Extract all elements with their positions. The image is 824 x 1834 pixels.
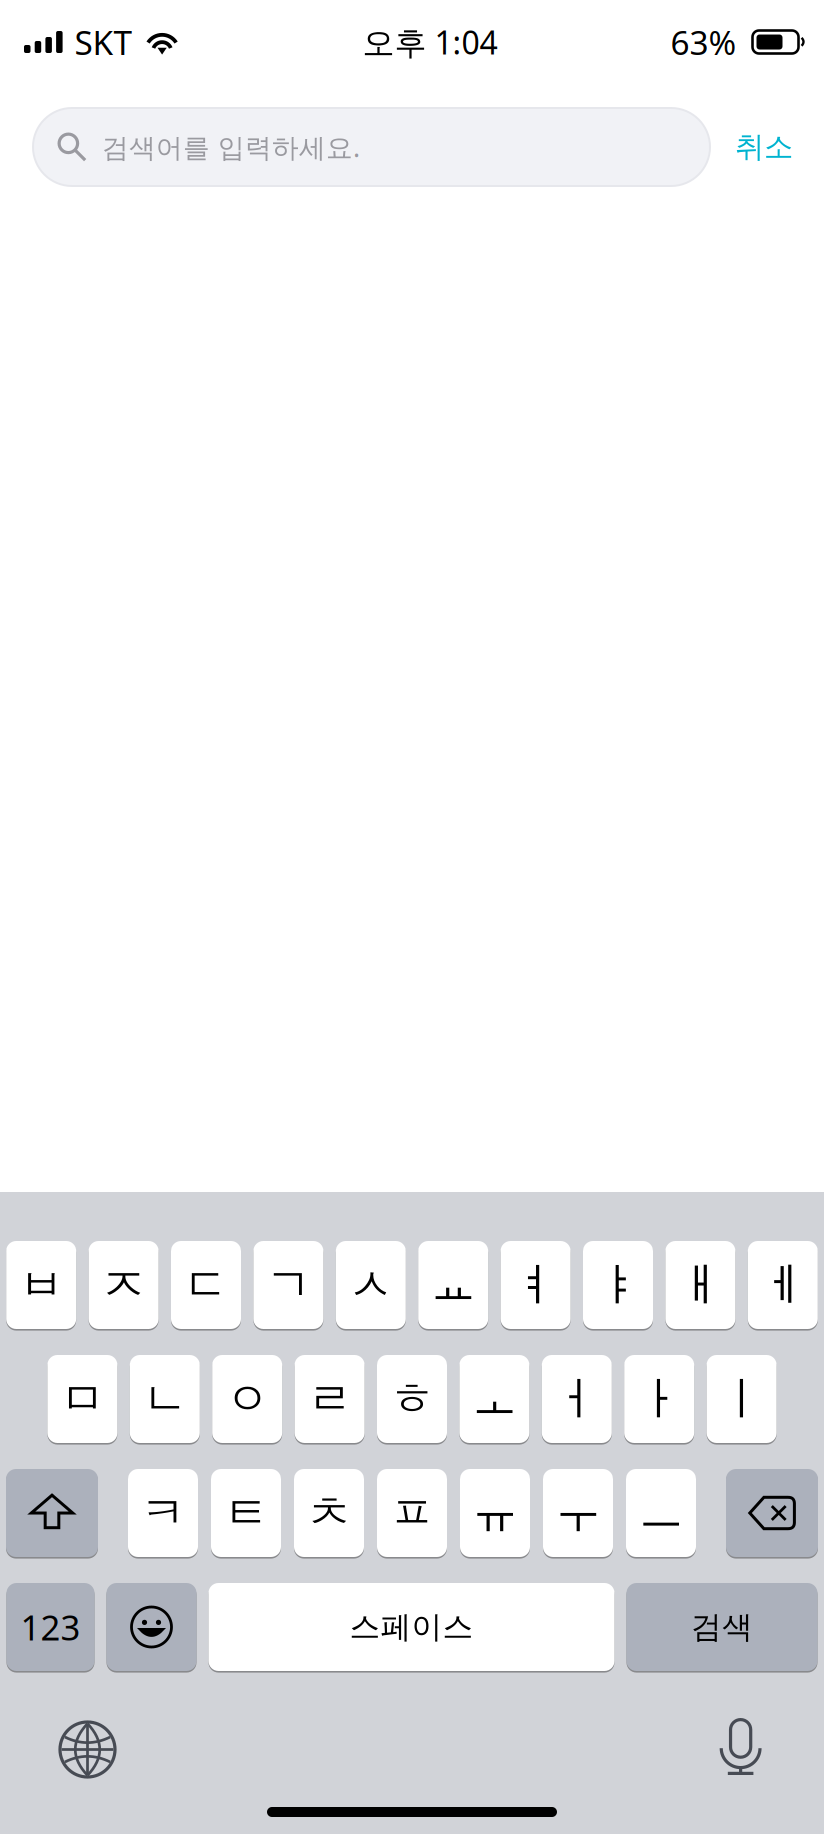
staticText: ㅑ (595, 1257, 640, 1313)
button[interactable]: ㅏ (624, 1355, 694, 1443)
staticText: ㅎ (389, 1371, 434, 1427)
staticText: ㅊ (306, 1485, 351, 1541)
button[interactable]: 스페이스 (208, 1583, 614, 1671)
button[interactable]: ㅋ (128, 1469, 198, 1557)
button[interactable]: ㅡ (626, 1469, 696, 1557)
button[interactable]: ㅓ (542, 1355, 612, 1443)
button[interactable]: ㅊ (294, 1469, 364, 1557)
button[interactable]: ㅅ (336, 1241, 406, 1329)
button[interactable]: ㅛ (418, 1241, 488, 1329)
staticText: SKT (75, 20, 133, 64)
button[interactable]: ㄷ (171, 1241, 241, 1329)
staticText: ㅐ (678, 1257, 723, 1313)
button[interactable]: ㅣ (707, 1355, 777, 1443)
button[interactable]: ㅕ (501, 1241, 571, 1329)
staticText: ㅏ (637, 1371, 682, 1427)
staticText: 취소 (735, 129, 793, 165)
button[interactable]: 123 (6, 1583, 94, 1671)
staticText: ㅠ (472, 1485, 517, 1541)
button[interactable]: ㅍ (377, 1469, 447, 1557)
button[interactable]: ㄴ (130, 1355, 200, 1443)
button[interactable]: Delete (726, 1469, 818, 1557)
button[interactable]: ㅂ (6, 1241, 76, 1329)
staticText: ㅗ (472, 1371, 517, 1427)
button[interactable]: ㅑ (583, 1241, 653, 1329)
staticText: ㅛ (431, 1257, 476, 1313)
staticText: 검색어를 입력하세요. (102, 129, 360, 165)
button[interactable]: ㅐ (665, 1241, 735, 1329)
staticText: 63% (670, 20, 736, 64)
button[interactable]: ㅠ (460, 1469, 530, 1557)
button[interactable]: ㄹ (295, 1355, 365, 1443)
button[interactable]: Shift (6, 1469, 98, 1557)
button[interactable]: 취소 (710, 108, 814, 186)
button[interactable]: 검색 (626, 1583, 817, 1671)
staticText: ㅓ (554, 1371, 599, 1427)
staticText: ㄴ (142, 1371, 187, 1427)
staticText: ㅕ (513, 1257, 558, 1313)
staticText: 오후 1:04 (362, 21, 497, 63)
staticText: ㅈ (101, 1257, 146, 1313)
staticText: 검색 (691, 1608, 753, 1646)
button[interactable]: ㄱ (253, 1241, 323, 1329)
button[interactable]: ㅁ (47, 1355, 117, 1443)
staticText: ㅣ (719, 1371, 764, 1427)
button[interactable]: Next keyboard (46, 1714, 129, 1785)
button[interactable]: Dictate (705, 1714, 776, 1779)
staticText: ㅡ (638, 1485, 683, 1541)
staticText: ㅂ (19, 1257, 64, 1313)
staticText: ㄹ (307, 1371, 352, 1427)
button[interactable]: ㅜ (543, 1469, 613, 1557)
button[interactable]: ㅔ (748, 1241, 818, 1329)
staticText: ㅍ (389, 1485, 434, 1541)
staticText: ㅋ (140, 1485, 185, 1541)
button[interactable]: ㅗ (459, 1355, 529, 1443)
button[interactable]: ㅎ (377, 1355, 447, 1443)
staticText: ㅅ (348, 1257, 393, 1313)
button[interactable]: ㅈ (89, 1241, 159, 1329)
button[interactable]: ㅇ (212, 1355, 282, 1443)
button[interactable]: Emoji (106, 1583, 196, 1671)
staticText: 123 (20, 1604, 80, 1650)
staticText: ㅌ (223, 1485, 268, 1541)
staticText: ㅜ (555, 1485, 600, 1541)
button[interactable]: 검색어를 입력하세요. (33, 108, 710, 186)
staticText: ㄷ (183, 1257, 228, 1313)
staticText: 스페이스 (349, 1608, 473, 1646)
staticText: ㄱ (266, 1257, 311, 1313)
staticText: ㅔ (760, 1257, 805, 1313)
button[interactable]: ㅌ (211, 1469, 281, 1557)
staticText: ㅇ (225, 1371, 270, 1427)
staticText: ㅁ (60, 1371, 105, 1427)
